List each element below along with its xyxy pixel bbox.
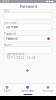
button[interactable]: Generator xyxy=(18,85,36,93)
staticText: 10/11/2024, 14:28 xyxy=(6,56,35,60)
staticText: Notes xyxy=(4,43,12,47)
staticText: Last modified xyxy=(6,53,24,56)
button[interactable]: Vault xyxy=(0,85,16,93)
staticText: Title xyxy=(4,9,10,13)
button[interactable] xyxy=(4,12,52,19)
staticText: Settings xyxy=(42,89,53,92)
staticText: Vault xyxy=(3,89,10,92)
staticText: Username xyxy=(4,21,17,24)
staticText: Password xyxy=(4,32,16,36)
staticText: Password xyxy=(19,3,36,9)
staticText: username xyxy=(6,25,19,29)
staticText: Password xyxy=(6,37,18,40)
button[interactable] xyxy=(4,47,52,53)
button[interactable]: username xyxy=(4,24,52,31)
button[interactable]: Password xyxy=(4,35,52,42)
button[interactable]: Settings xyxy=(39,85,56,93)
staticText: Generator xyxy=(20,89,34,92)
staticText: 9:41 xyxy=(2,0,9,3)
